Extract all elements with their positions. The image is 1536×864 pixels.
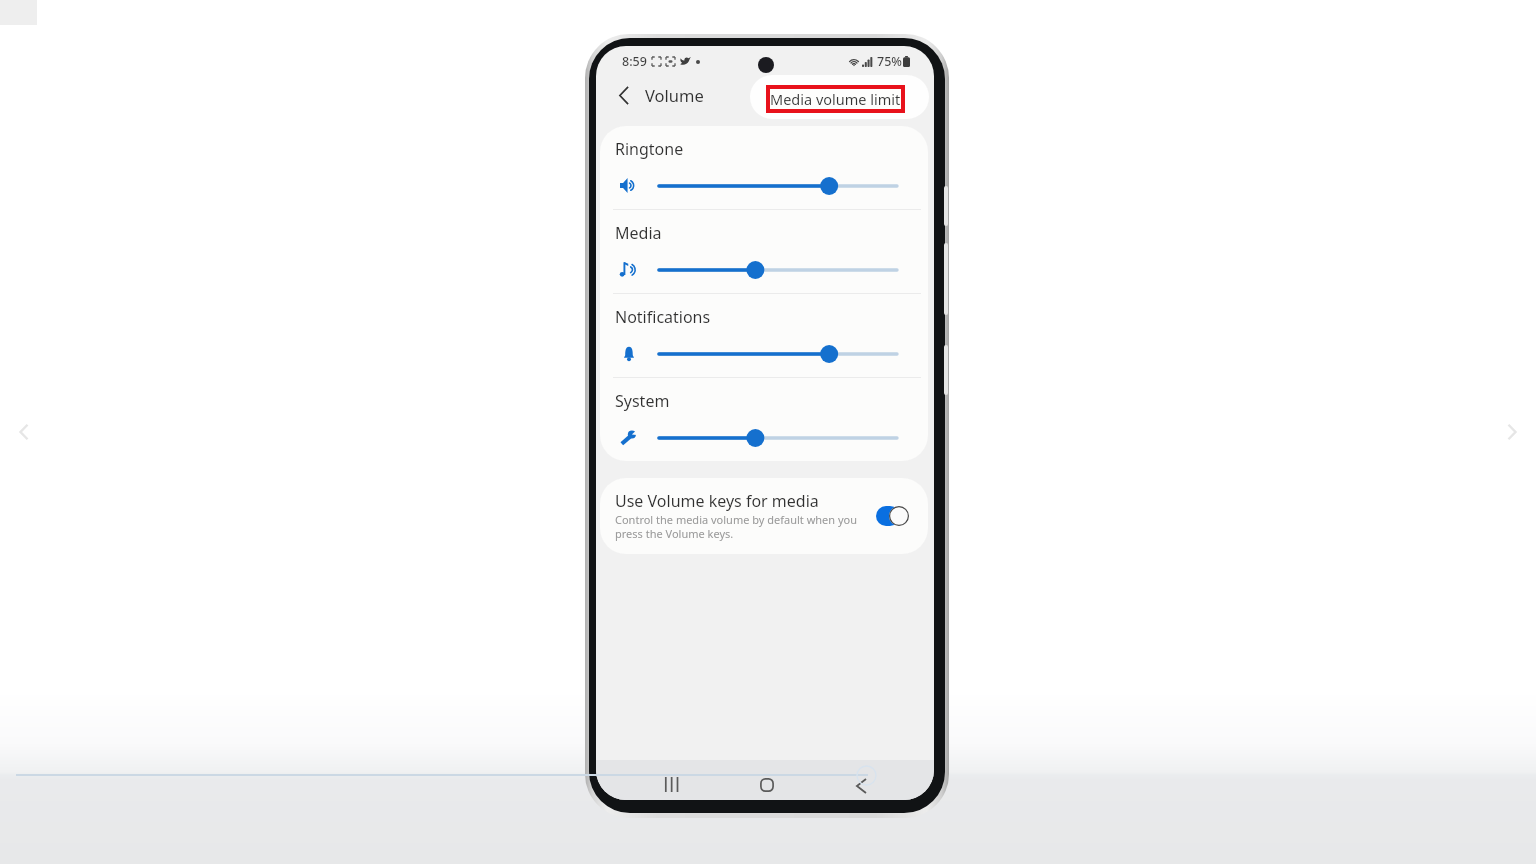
button[interactable]: Media volume — [659, 258, 897, 282]
staticText: 8:59 — [622, 53, 647, 70]
button[interactable]: System volume — [659, 426, 897, 450]
button[interactable]: Use Volume keys for media toggle — [876, 505, 910, 527]
staticText: 75% — [877, 53, 902, 70]
staticText: Media volume limit — [770, 89, 901, 109]
staticText: Ringtone — [615, 138, 684, 160]
button[interactable]: Media volume limit — [750, 75, 929, 119]
staticText: Media — [615, 222, 662, 244]
button[interactable]: Notifications volume — [659, 342, 897, 366]
button[interactable]: Previous — [0, 408, 48, 456]
button[interactable]: Back — [835, 766, 887, 800]
staticText: System — [615, 390, 670, 412]
staticText: Control the media volume by default when… — [615, 512, 858, 541]
staticText: Use Volume keys for media — [615, 490, 819, 512]
button[interactable]: Ringtone volume — [659, 174, 897, 198]
button[interactable]: Navigate up — [609, 80, 639, 110]
button[interactable]: Home — [741, 765, 793, 800]
button[interactable]: Next — [1488, 408, 1536, 456]
staticText: Volume — [645, 84, 704, 106]
button[interactable]: Use Volume keys for media — [600, 478, 928, 554]
staticText: Notifications — [615, 306, 711, 328]
button[interactable]: Recent apps — [645, 764, 697, 800]
